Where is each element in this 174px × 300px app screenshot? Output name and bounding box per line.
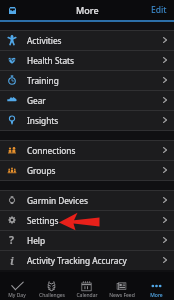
staticText: Help	[27, 235, 46, 246]
button[interactable]: Garmin Devices	[0, 190, 174, 210]
staticText: More	[76, 4, 99, 16]
button[interactable]: Challenges	[34, 272, 69, 300]
staticText: Activities	[27, 35, 62, 46]
button[interactable]: Gear	[0, 90, 174, 110]
staticText: Activity Tracking Accuracy	[27, 255, 127, 266]
staticText: Health Stats	[27, 55, 75, 66]
staticText: Training	[27, 75, 59, 86]
button[interactable]: Activities	[0, 30, 174, 50]
staticText: Calendar	[76, 292, 98, 299]
button[interactable]: Inbox	[7, 5, 17, 15]
button[interactable]: Calendar	[69, 272, 104, 300]
button[interactable]: Connections	[0, 140, 174, 160]
staticText: i	[10, 253, 14, 268]
button[interactable]: My Day	[0, 272, 34, 300]
staticText: Connections	[27, 145, 76, 156]
button[interactable]: Health Stats	[0, 50, 174, 70]
staticText: More	[150, 292, 163, 299]
button[interactable]: ?	[0, 230, 174, 250]
staticText: Settings	[27, 215, 59, 226]
staticText: News Feed	[109, 292, 135, 299]
staticText: Gear	[27, 95, 46, 106]
button[interactable]: Groups	[0, 160, 174, 180]
staticText: Insights	[27, 115, 59, 126]
staticText: Garmin Devices	[27, 195, 88, 206]
staticText: Groups	[27, 165, 56, 176]
button[interactable]: Training	[0, 70, 174, 90]
button[interactable]: i	[0, 250, 174, 270]
button[interactable]: Edit	[144, 1, 174, 19]
staticText: Edit	[151, 4, 167, 16]
staticText: My Day	[8, 292, 26, 299]
staticText: ?	[9, 233, 15, 247]
button[interactable]: Insights	[0, 110, 174, 130]
button[interactable]: More	[139, 272, 174, 300]
button[interactable]: News Feed	[104, 272, 139, 300]
button[interactable]: Settings	[0, 210, 174, 230]
staticText: Challenges	[39, 292, 65, 299]
